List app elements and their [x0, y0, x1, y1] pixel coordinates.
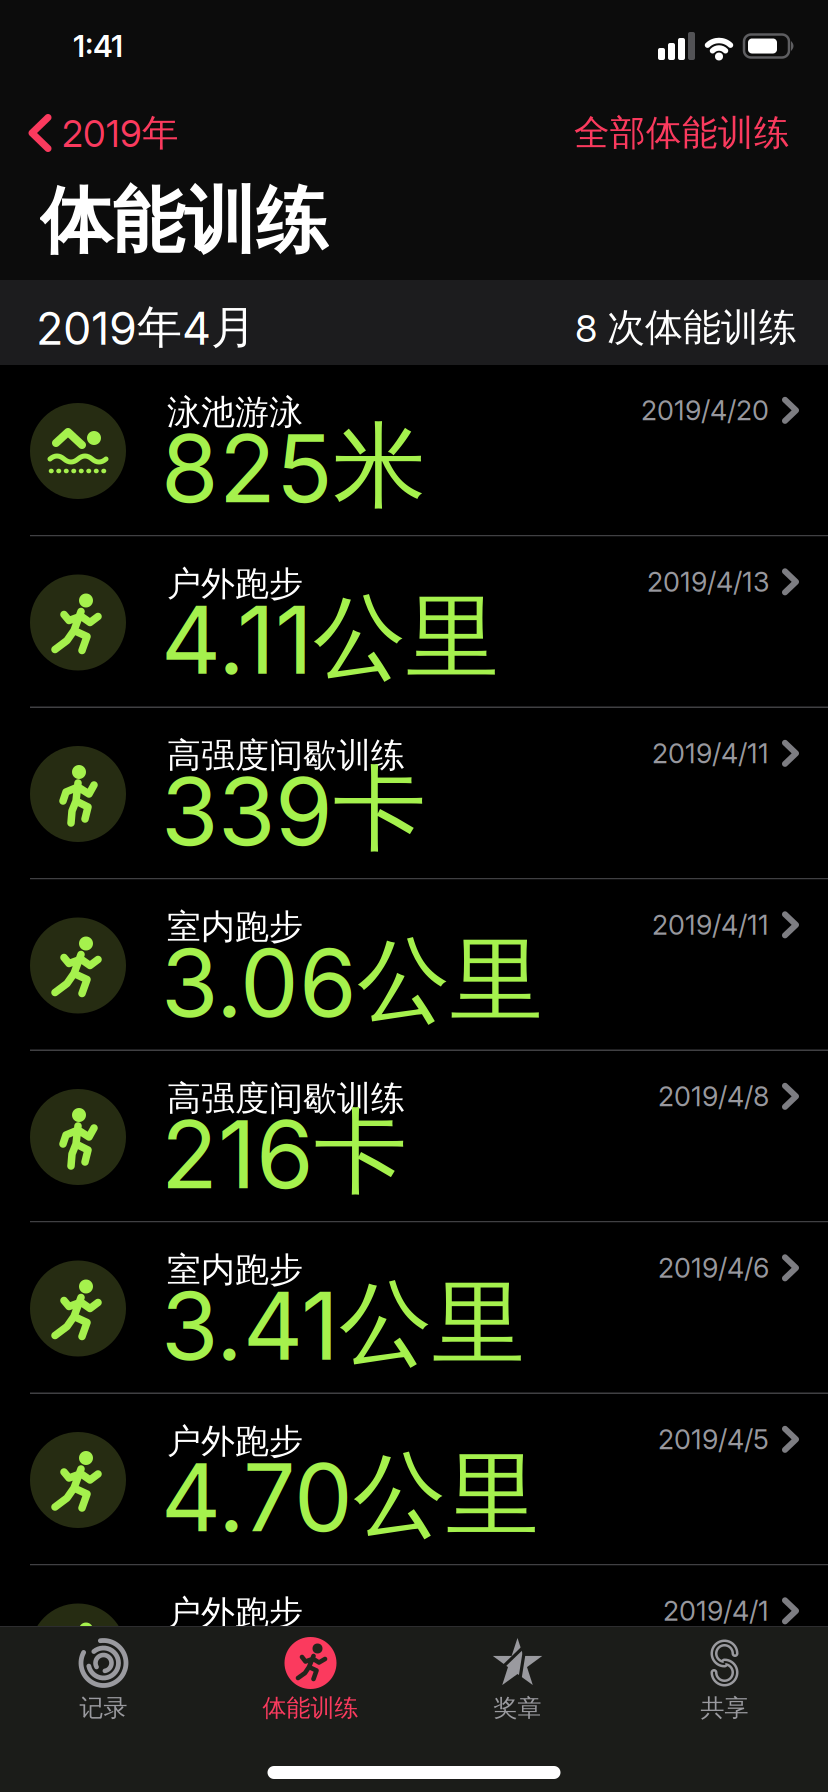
- staticText: 高强度间歇训练: [167, 1077, 405, 1120]
- staticText: 2019/4/8: [658, 1080, 769, 1113]
- staticText: 泳池游泳: [167, 391, 303, 434]
- button[interactable]: 室内跑步: [0, 1222, 828, 1394]
- staticText: 216卡: [161, 1094, 407, 1211]
- staticText: 3.41公里: [161, 1265, 525, 1383]
- staticText: 8 次体能训练: [575, 304, 797, 351]
- staticText: 2019年: [62, 110, 179, 156]
- staticText: 记录: [79, 1693, 127, 1723]
- staticText: 2019/4/11: [652, 908, 769, 941]
- button[interactable]: 全部体能训练: [574, 111, 790, 155]
- button[interactable]: 体能训练: [207, 1637, 414, 1723]
- staticText: 825米: [161, 408, 426, 525]
- button[interactable]: 奖章: [414, 1637, 621, 1723]
- staticText: 2019年4月: [36, 299, 256, 356]
- button[interactable]: 记录: [0, 1637, 207, 1723]
- button[interactable]: 室内跑步: [0, 879, 828, 1051]
- staticText: 2019/4/1: [663, 1594, 769, 1627]
- staticText: 奖章: [493, 1693, 541, 1723]
- button[interactable]: 户外跑步: [0, 536, 828, 708]
- button[interactable]: 户外跑步: [0, 1565, 828, 1737]
- staticText: 3.06公里: [161, 922, 543, 1040]
- staticText: 室内跑步: [167, 1248, 303, 1291]
- button[interactable]: 高强度间歇训练: [0, 1051, 828, 1222]
- staticText: 户外跑步: [167, 1420, 303, 1463]
- staticText: 户外跑步: [167, 562, 303, 605]
- staticText: 2019/4/13: [647, 565, 769, 598]
- staticText: 高强度间歇训练: [167, 734, 405, 777]
- staticText: 2019/4/11: [652, 737, 769, 770]
- staticText: 4.91公里: [161, 1617, 526, 1735]
- staticText: 2019/4/20: [641, 394, 769, 427]
- staticText: 室内跑步: [167, 905, 303, 948]
- staticText: 4.70公里: [161, 1437, 539, 1554]
- staticText: 1:41: [73, 28, 123, 64]
- staticText: 全部体能训练: [574, 111, 790, 155]
- staticText: 户外跑步: [167, 1591, 303, 1634]
- staticText: 体能训练: [40, 176, 328, 267]
- staticText: 2019/4/5: [658, 1423, 769, 1456]
- staticText: 2019/4/6: [658, 1251, 769, 1284]
- staticText: 339卡: [161, 751, 426, 868]
- button[interactable]: 高强度间歇训练: [0, 708, 828, 879]
- staticText: 共享: [700, 1693, 748, 1723]
- staticText: 4.11公里: [161, 579, 499, 697]
- button[interactable]: 户外跑步: [0, 1394, 828, 1565]
- button[interactable]: 共享: [621, 1637, 828, 1723]
- staticText: 体能训练: [262, 1693, 358, 1723]
- button[interactable]: 2019年: [28, 110, 179, 156]
- button[interactable]: 泳池游泳: [0, 365, 828, 536]
